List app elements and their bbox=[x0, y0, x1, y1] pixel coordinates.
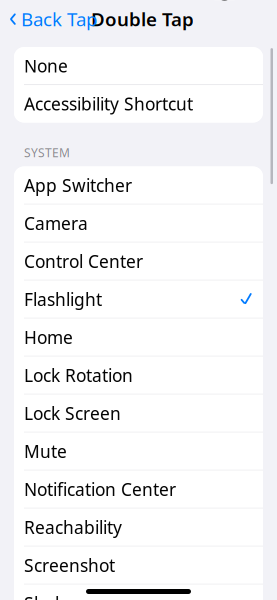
button[interactable]: Lock Screen bbox=[14, 394, 263, 432]
button[interactable]: App Switcher bbox=[14, 166, 263, 204]
staticText: Control Center bbox=[24, 250, 143, 273]
staticText: None bbox=[24, 54, 68, 77]
staticText: Mute bbox=[24, 440, 67, 463]
staticText: App Switcher bbox=[24, 174, 132, 197]
staticText: Reachability bbox=[24, 516, 122, 539]
button[interactable]: Home bbox=[14, 318, 263, 356]
staticText: Camera bbox=[24, 212, 88, 235]
button[interactable]: Screenshot bbox=[14, 546, 263, 584]
button[interactable]: Reachability bbox=[14, 508, 263, 546]
button[interactable]: Control Center bbox=[14, 242, 263, 280]
staticText: Lock Rotation bbox=[24, 364, 133, 387]
button[interactable]: Accessibility Shortcut bbox=[14, 85, 263, 122]
button[interactable]: Mute bbox=[14, 432, 263, 470]
staticText: Flashlight bbox=[24, 288, 102, 311]
button[interactable]: None bbox=[14, 47, 263, 84]
button[interactable]: Flashlight bbox=[14, 280, 263, 318]
staticText: Lock Screen bbox=[24, 402, 121, 425]
button[interactable]: Shake bbox=[14, 584, 263, 600]
button[interactable]: Lock Rotation bbox=[14, 356, 263, 394]
staticText: SYSTEM bbox=[24, 144, 70, 160]
button[interactable]: Camera bbox=[14, 204, 263, 242]
staticText: Home bbox=[24, 326, 73, 349]
staticText: Shake bbox=[24, 592, 74, 600]
button[interactable]: Back Tap bbox=[0, 1, 106, 37]
button[interactable]: Notification Center bbox=[14, 470, 263, 508]
staticText: Accessibility Shortcut bbox=[24, 92, 193, 115]
staticText: Back Tap bbox=[21, 7, 97, 31]
staticText: Screenshot bbox=[24, 554, 115, 577]
staticText: Double Tap bbox=[91, 7, 194, 31]
staticText: Notification Center bbox=[24, 478, 176, 501]
